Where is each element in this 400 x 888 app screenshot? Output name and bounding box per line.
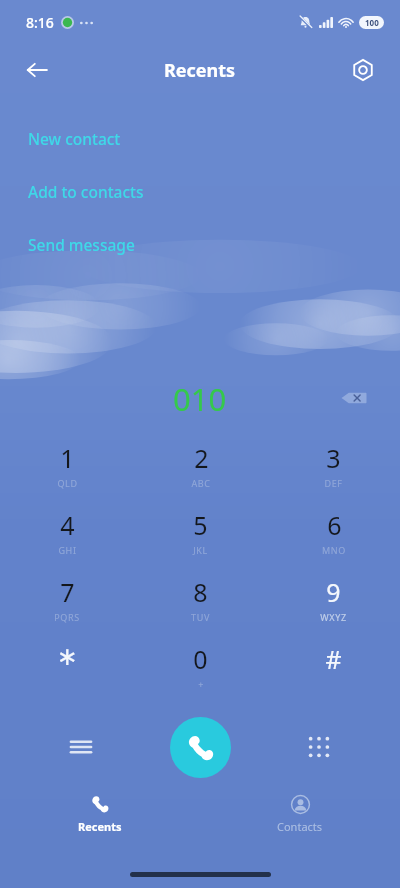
button[interactable]: 5 (134, 510, 267, 558)
staticText: JKL (193, 544, 208, 556)
staticText: Recents (78, 819, 122, 834)
button[interactable]: 9 (267, 577, 400, 625)
staticText: 7 (60, 575, 75, 609)
button[interactable]: Back (14, 47, 60, 93)
staticText: 9 (326, 575, 341, 609)
staticText: TUV (191, 611, 210, 623)
button[interactable]: 3 (267, 443, 400, 491)
staticText: 1 (60, 441, 75, 475)
staticText: 8 (193, 575, 208, 609)
button[interactable]: 2 (134, 443, 267, 491)
button[interactable]: Add to contacts (0, 165, 400, 218)
staticText: 010 (173, 378, 227, 418)
button[interactable]: Contacts (200, 793, 400, 834)
staticText: Send message (28, 234, 135, 255)
button[interactable]: Call (170, 717, 231, 778)
button[interactable]: Backspace (334, 378, 374, 418)
staticText: # (325, 642, 342, 676)
staticText: 100 (365, 17, 379, 28)
staticText: 4 (60, 508, 75, 542)
button[interactable]: Keypad (296, 724, 342, 770)
button[interactable]: Send message (0, 218, 400, 271)
staticText: Add to contacts (28, 181, 144, 202)
staticText: MNO (322, 544, 346, 556)
staticText: Contacts (277, 819, 323, 834)
staticText: DEF (324, 477, 343, 489)
staticText: Recents (164, 58, 236, 83)
button[interactable]: Recents (0, 793, 200, 834)
button[interactable]: ∗ (0, 644, 134, 673)
staticText: PQRS (54, 611, 80, 623)
staticText: 6 (327, 508, 342, 542)
button[interactable]: Settings (340, 47, 386, 93)
staticText: New contact (28, 128, 121, 149)
staticText: 8:16 (26, 13, 54, 32)
staticText: ∗ (57, 642, 78, 671)
button[interactable]: Call log (58, 724, 104, 770)
button[interactable]: 6 (267, 510, 400, 558)
staticText: GHI (58, 544, 77, 556)
button[interactable]: # (267, 644, 400, 678)
staticText: QLD (57, 477, 78, 489)
button[interactable]: 7 (0, 577, 134, 625)
button[interactable]: 1 (0, 443, 134, 491)
staticText: ABC (191, 477, 211, 489)
staticText: 3 (326, 441, 341, 475)
button[interactable]: 0 (134, 644, 267, 692)
button[interactable]: 4 (0, 510, 134, 558)
staticText: 2 (194, 441, 209, 475)
button[interactable]: New contact (0, 112, 400, 165)
staticText: + (198, 678, 204, 690)
staticText: 5 (193, 508, 208, 542)
button[interactable]: 8 (134, 577, 267, 625)
staticText: WXYZ (320, 611, 347, 623)
staticText: 0 (193, 642, 208, 676)
